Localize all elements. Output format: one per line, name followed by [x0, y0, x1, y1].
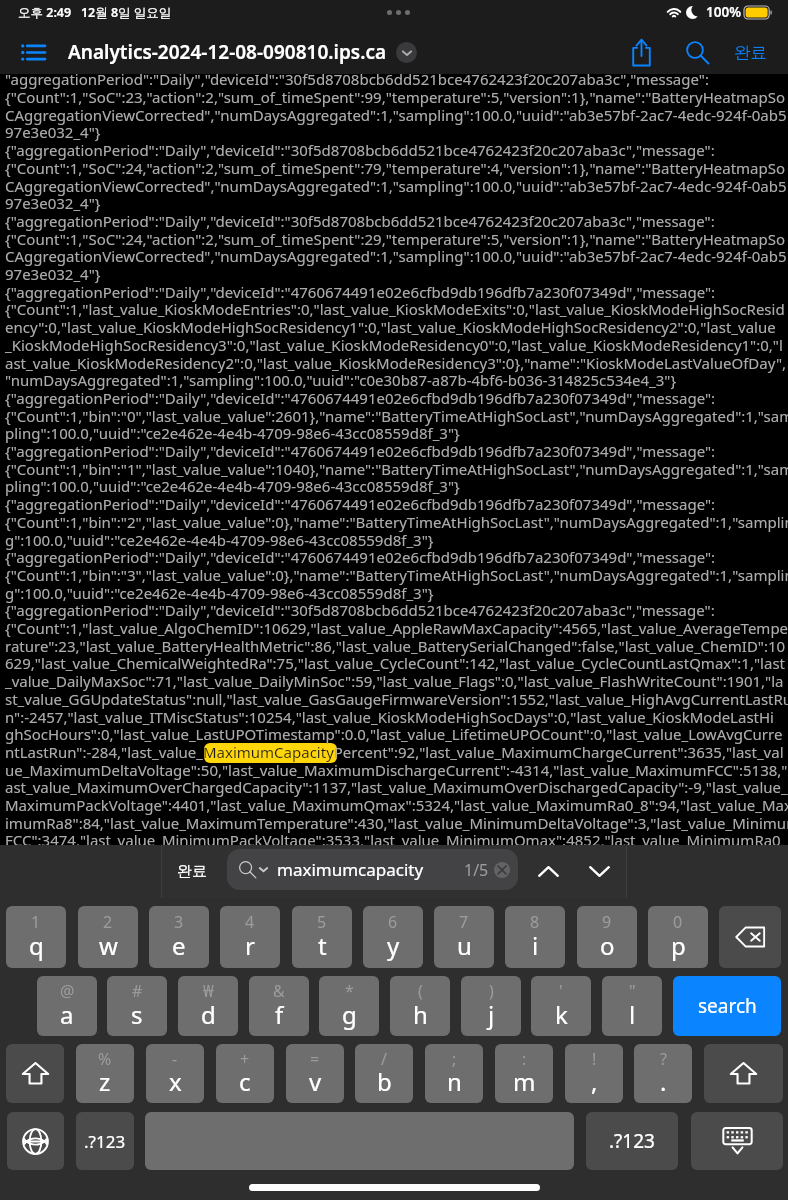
button[interactable]: Shift: [6, 1044, 64, 1103]
staticText: x: [169, 1065, 182, 1098]
staticText: maximumcapacity: [277, 858, 424, 881]
staticText: .: [660, 1065, 667, 1098]
button[interactable]: 4: [220, 906, 280, 968]
staticText: a: [60, 998, 74, 1031]
button[interactable]: 3: [149, 906, 209, 968]
staticText: {"aggregationPeriod":"Daily","deviceId":…: [5, 547, 716, 567]
button[interactable]: search key: [673, 976, 781, 1036]
staticText: ast_value_KioskModeResidency2":0,"last_v…: [5, 353, 787, 373]
button[interactable]: =: [286, 1044, 344, 1103]
staticText: 97e3e032_4"}: [5, 193, 101, 213]
button[interactable]: Next keyboard: [7, 1112, 64, 1170]
button[interactable]: Share: [624, 35, 658, 69]
staticText: u: [457, 929, 472, 962]
button[interactable]: @: [37, 976, 97, 1036]
staticText: ?: [660, 1048, 667, 1070]
button[interactable]: ;: [425, 1044, 483, 1103]
staticText: rature":23,"last_value_BatteryHealthMetr…: [5, 636, 786, 656]
staticText: FCC":3474,"last_value_MinimumPackVoltage…: [5, 830, 788, 850]
button[interactable]: #: [107, 976, 167, 1036]
button[interactable]: ₩: [178, 976, 238, 1036]
button[interactable]: ?: [634, 1044, 692, 1103]
staticText: {"aggregationPeriod":"Daily","deviceId":…: [5, 140, 715, 160]
staticText: ue_MaximumDeltaVoltage":50,"last_value_M…: [5, 760, 788, 780]
staticText: z: [99, 1065, 111, 1098]
button[interactable]: Outline: [14, 32, 52, 72]
button[interactable]: Previous result: [528, 851, 569, 892]
staticText: c: [239, 1065, 251, 1098]
staticText: 2: [103, 911, 113, 933]
staticText: n: [447, 1065, 462, 1098]
staticText: @: [60, 980, 75, 1002]
button[interactable]: Clear search: [494, 862, 510, 878]
staticText: pling":100.0,"uuid":"ce2e462e-4e4b-4709-…: [5, 476, 460, 496]
staticText: CAggregationViewCorrected","numDaysAggre…: [5, 176, 787, 196]
staticText: "aggregationPeriod":"Daily","deviceId":"…: [5, 69, 709, 89]
button[interactable]: 6: [363, 906, 423, 968]
button[interactable]: ): [461, 976, 521, 1036]
button[interactable]: 완료: [170, 853, 213, 890]
staticText: e: [172, 929, 186, 962]
staticText: -: [172, 1048, 178, 1070]
button[interactable]: Numbers and symbols: [586, 1112, 678, 1170]
staticText: j: [488, 998, 495, 1031]
staticText: 97e3e032_4"}: [5, 122, 101, 142]
staticText: {"Count":1,"SoC":23,"action":2,"sum_of_t…: [5, 87, 786, 107]
staticText: {"aggregationPeriod":"Daily","deviceId":…: [5, 211, 715, 231]
button[interactable]: Shift: [704, 1044, 783, 1103]
button[interactable]: :: [495, 1044, 553, 1103]
staticText: &: [273, 980, 285, 1002]
button[interactable]: 1: [6, 906, 66, 968]
button[interactable]: !: [565, 1044, 623, 1103]
staticText: ntLastRun":-284,"last_value_MaximumCapac…: [5, 742, 784, 762]
staticText: {"Count":1,"bin":"2","last_value_value":…: [5, 512, 788, 532]
staticText: /: [381, 1048, 387, 1070]
staticText: {"Count":1,"last_value_AlgoChemID":10629…: [5, 618, 788, 638]
staticText: 9: [602, 911, 612, 933]
button[interactable]: ": [602, 976, 662, 1036]
staticText: MaximumPackVoltage":4401,"last_value_Max…: [5, 795, 788, 815]
staticText: t: [318, 929, 327, 962]
button[interactable]: 7: [434, 906, 494, 968]
button[interactable]: Hide keyboard: [691, 1112, 783, 1170]
button[interactable]: Search: [680, 35, 714, 69]
button[interactable]: /: [355, 1044, 413, 1103]
button[interactable]: ': [531, 976, 591, 1036]
button[interactable]: Document options: [396, 42, 417, 63]
button[interactable]: &: [249, 976, 309, 1036]
staticText: 629,"last_value_ChemicalWeightedRa":75,"…: [5, 653, 785, 673]
staticText: m: [513, 1065, 536, 1098]
button[interactable]: 2: [78, 906, 138, 968]
button[interactable]: 0: [648, 906, 708, 968]
button[interactable]: -: [146, 1044, 204, 1103]
button[interactable]: 완료: [730, 36, 771, 69]
staticText: 5: [317, 911, 327, 933]
staticText: {"aggregationPeriod":"Daily","deviceId":…: [5, 388, 716, 408]
staticText: 97e3e032_4"}: [5, 264, 101, 284]
button[interactable]: 5: [292, 906, 352, 968]
button[interactable]: Next result: [579, 851, 620, 892]
staticText: 3: [174, 911, 184, 933]
staticText: ₩: [203, 980, 214, 1002]
staticText: o: [600, 929, 615, 962]
staticText: ast_value_MaximumOverChargedCapacity":11…: [5, 777, 788, 797]
button[interactable]: %: [76, 1044, 134, 1103]
button[interactable]: *: [319, 976, 379, 1036]
button[interactable]: (: [390, 976, 450, 1036]
button[interactable]: +: [216, 1044, 274, 1103]
staticText: ": [629, 980, 636, 1002]
staticText: 1: [31, 911, 41, 933]
button[interactable]: Numbers and symbols: [76, 1112, 134, 1170]
button[interactable]: maximumcapacity: [227, 849, 518, 890]
button[interactable]: 9: [577, 906, 637, 968]
staticText: CAggregationViewCorrected","numDaysAggre…: [5, 246, 787, 266]
staticText: {"Count":1,"SoC":24,"action":2,"sum_of_t…: [5, 229, 786, 249]
staticText: =: [310, 1048, 320, 1070]
staticText: _KioskModeHighSocResidency3":0,"last_val…: [5, 335, 783, 355]
button[interactable]: Backspace: [719, 906, 781, 968]
button[interactable]: 8: [505, 906, 565, 968]
staticText: CAggregationViewCorrected","numDaysAggre…: [5, 105, 787, 125]
staticText: g":100.0,"uuid":"ce2e462e-4e4b-4709-98e6…: [5, 583, 434, 603]
staticText: {"aggregationPeriod":"Daily","deviceId":…: [5, 494, 716, 514]
